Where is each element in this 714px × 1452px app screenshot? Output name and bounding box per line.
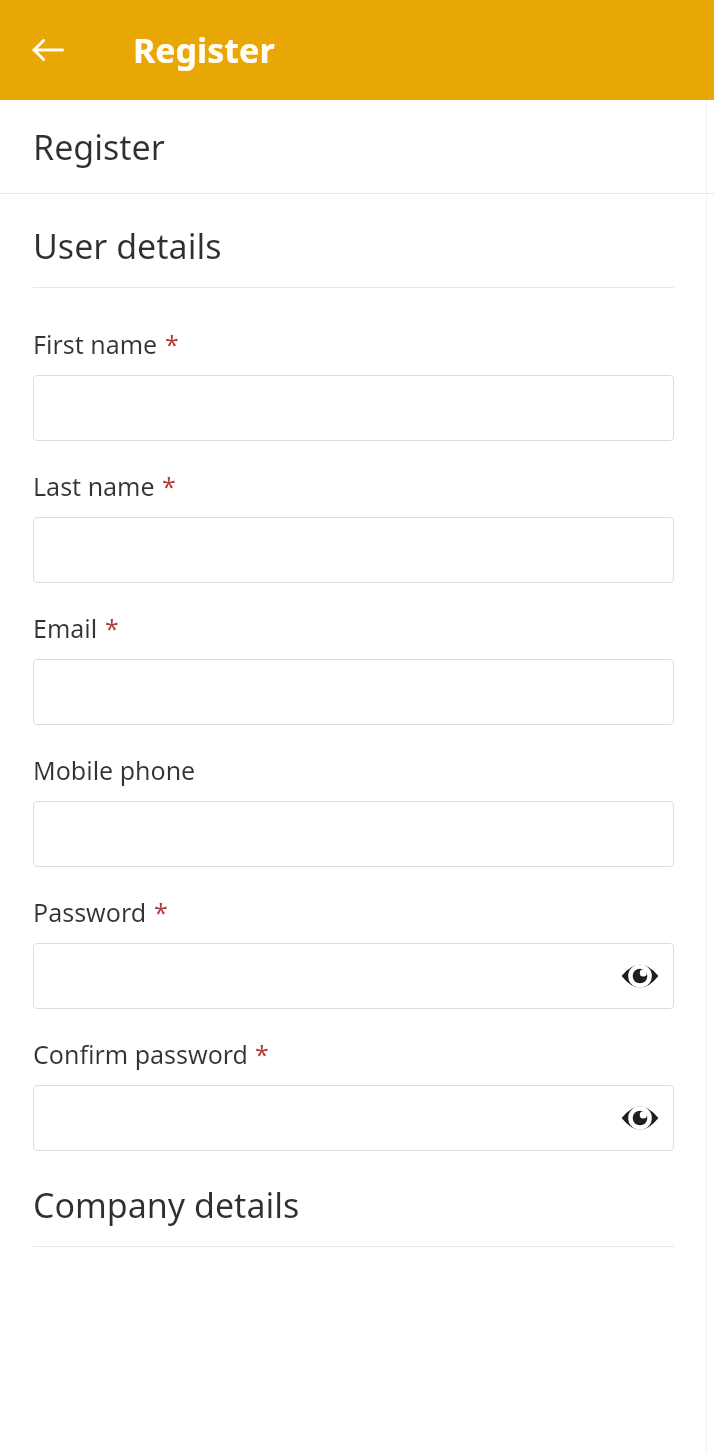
staticText: Password: [33, 895, 147, 929]
button[interactable]: Show password: [614, 1092, 666, 1144]
button[interactable]: Show password: [33, 943, 674, 1009]
button[interactable]: [33, 517, 674, 583]
staticText: Confirm password: [33, 1037, 248, 1071]
staticText: *: [162, 469, 176, 503]
button[interactable]: [33, 801, 674, 867]
staticText: *: [255, 1037, 269, 1071]
staticText: Mobile phone: [33, 753, 196, 787]
staticText: *: [105, 611, 119, 645]
staticText: Register: [133, 27, 275, 73]
button[interactable]: Back: [18, 20, 78, 80]
button[interactable]: Show password: [614, 950, 666, 1002]
staticText: User details: [33, 223, 222, 269]
staticText: Email: [33, 611, 98, 645]
button[interactable]: [33, 659, 674, 725]
staticText: *: [154, 895, 168, 929]
staticText: *: [165, 327, 179, 361]
button[interactable]: [33, 375, 674, 441]
button[interactable]: Register: [0, 100, 714, 193]
staticText: Register: [33, 124, 165, 170]
staticText: Company details: [33, 1182, 300, 1228]
staticText: Last name: [33, 469, 155, 503]
button[interactable]: Show password: [33, 1085, 674, 1151]
staticText: First name: [33, 327, 158, 361]
